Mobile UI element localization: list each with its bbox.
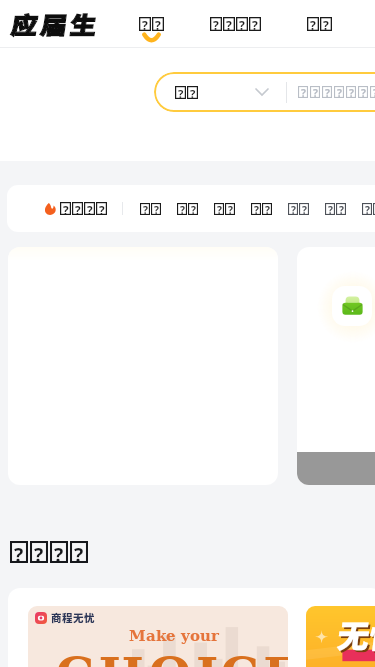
button[interactable]: ?	[10, 541, 88, 563]
button[interactable]	[297, 247, 375, 485]
staticText: ?	[313, 86, 318, 98]
staticText: ?	[143, 203, 148, 215]
staticText: ?	[339, 203, 344, 215]
staticText: ?	[310, 17, 316, 31]
staticText: ?	[302, 203, 307, 215]
staticText: ?	[87, 202, 93, 215]
staticText: ?	[373, 86, 375, 98]
button[interactable]: 应届生 home	[0, 0, 120, 47]
staticText: ?	[178, 86, 184, 99]
staticText: ?	[74, 541, 84, 563]
staticText: ?	[254, 203, 259, 215]
staticText: ?	[54, 541, 64, 563]
button[interactable]: ?	[288, 203, 309, 215]
staticText: ?	[154, 203, 159, 215]
button[interactable]: ?	[7, 185, 375, 232]
button[interactable]: ?	[133, 0, 170, 47]
staticText: ?	[99, 202, 105, 215]
button[interactable]: ?	[154, 72, 375, 112]
staticText: ?	[328, 203, 333, 215]
button[interactable]: ?	[362, 203, 375, 215]
staticText: ?	[323, 17, 329, 31]
staticText: ?	[239, 17, 245, 31]
staticText: ?	[301, 86, 306, 98]
staticText: ?	[155, 17, 161, 31]
staticText: ?	[291, 203, 296, 215]
staticText: ?	[75, 202, 81, 215]
staticText: ?	[228, 203, 233, 215]
staticText: ?	[349, 86, 354, 98]
staticText: ?	[337, 86, 342, 98]
staticText: ?	[252, 17, 258, 31]
button[interactable]: ?	[204, 0, 266, 47]
staticText: ?	[190, 86, 196, 99]
button[interactable]	[28, 606, 288, 667]
button[interactable]: ?	[177, 203, 198, 215]
staticText: ?	[63, 202, 69, 215]
staticText: ?	[180, 203, 185, 215]
staticText: ?	[34, 541, 44, 563]
staticText: ?	[213, 17, 219, 31]
button[interactable]	[306, 606, 375, 667]
staticText: ?	[226, 17, 232, 31]
staticText: ?	[142, 17, 148, 31]
staticText: ?	[191, 203, 196, 215]
button[interactable]: ?	[325, 203, 346, 215]
staticText: ?	[361, 86, 366, 98]
staticText: ?	[365, 203, 370, 215]
staticText: ?	[325, 86, 330, 98]
staticText: ?	[14, 541, 24, 563]
staticText: ?	[265, 203, 270, 215]
button[interactable]: ?	[301, 0, 338, 47]
button[interactable]: ?	[140, 203, 161, 215]
staticText: ?	[217, 203, 222, 215]
button[interactable]: ?	[251, 203, 272, 215]
button[interactable]: ?	[214, 203, 235, 215]
